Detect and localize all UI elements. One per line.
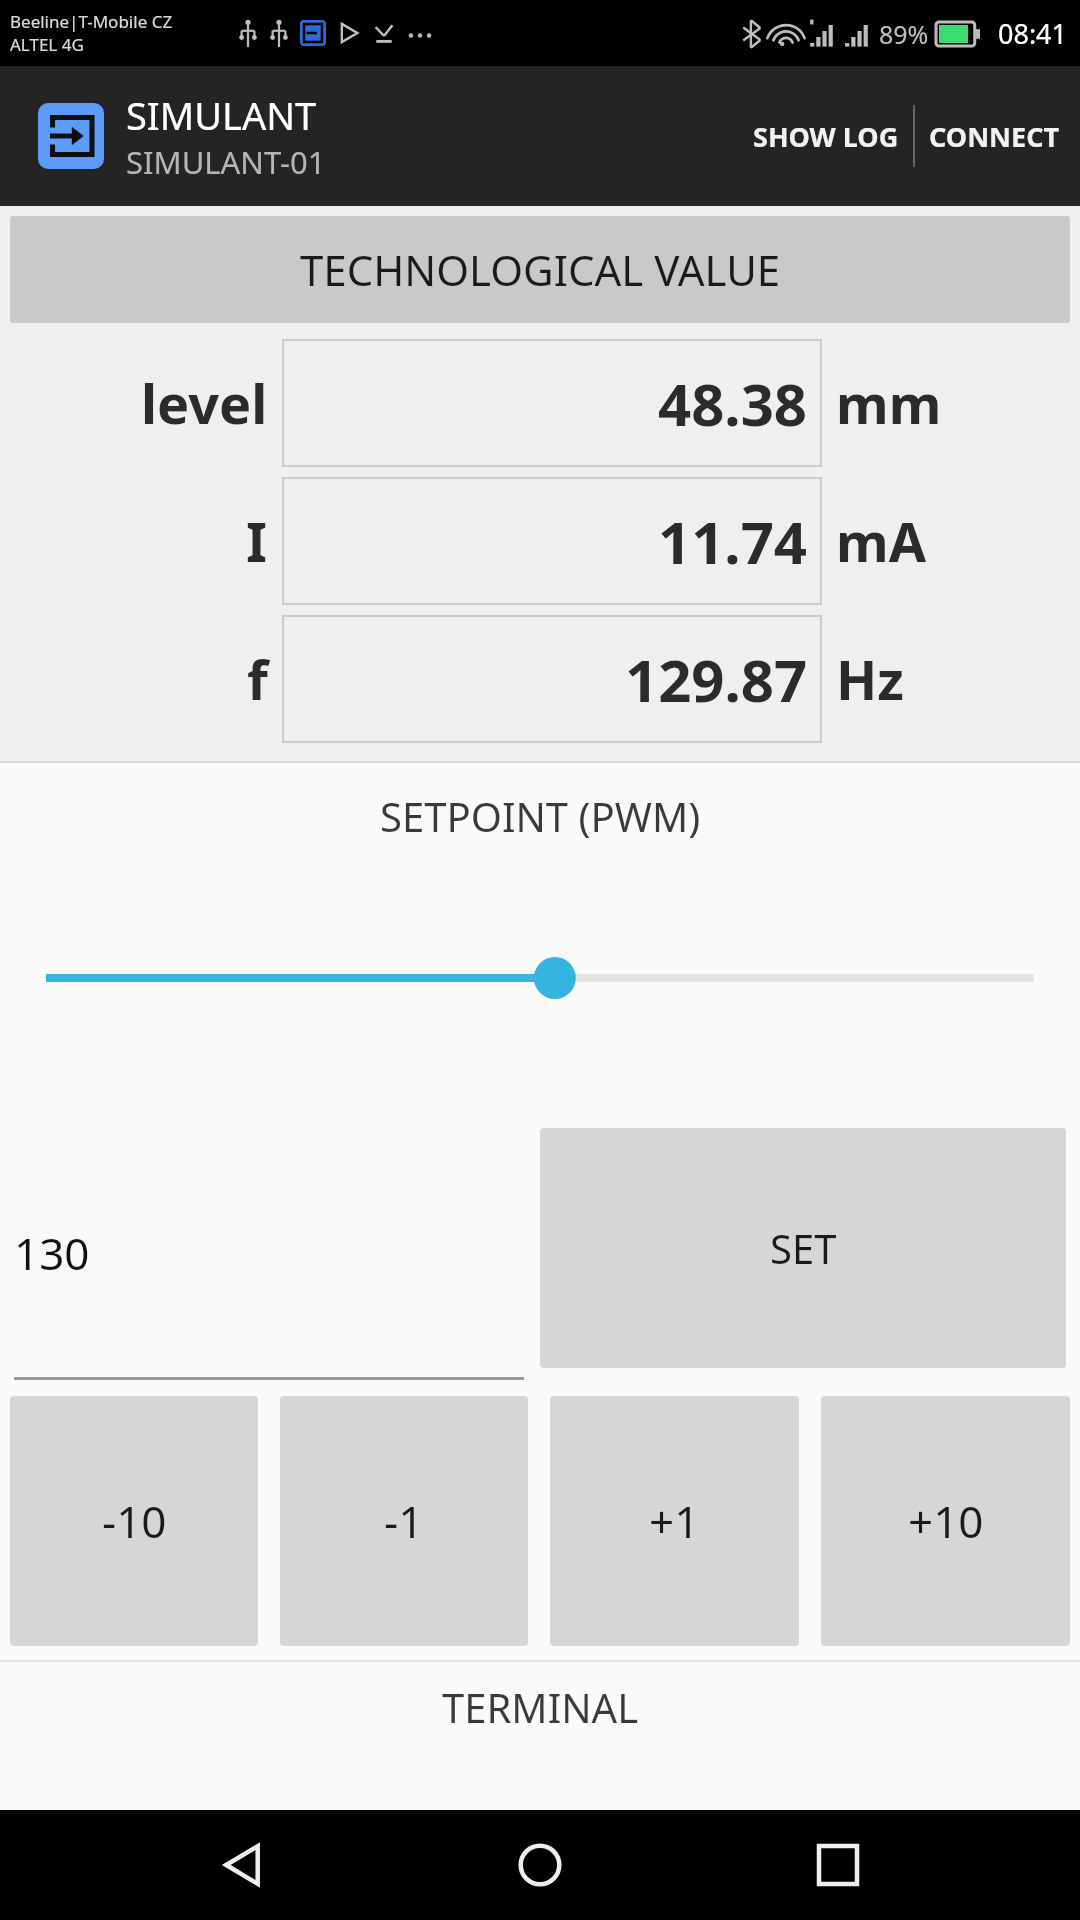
staticText: 130 (14, 1223, 90, 1283)
staticText: TECHNOLOGICAL VALUE (300, 241, 781, 298)
staticText: -1 (384, 1491, 424, 1551)
button[interactable]: Back (188, 1810, 298, 1920)
staticText: 08:41 (998, 15, 1068, 52)
staticText: 89% (879, 17, 929, 51)
button[interactable]: TECHNOLOGICAL VALUE (10, 216, 1070, 323)
staticText: I (246, 504, 268, 578)
button[interactable]: 130 (14, 1128, 524, 1377)
staticText: +10 (908, 1491, 984, 1551)
button[interactable]: +1 (550, 1396, 799, 1646)
staticText: -10 (102, 1491, 167, 1551)
button[interactable]: Recent apps (783, 1810, 893, 1920)
button[interactable]: SHOW LOG (739, 66, 913, 206)
staticText: TERMINAL (442, 1680, 639, 1734)
staticText: SIMULANT (126, 89, 317, 141)
staticText: Hz (836, 642, 904, 716)
button[interactable]: CONNECT (915, 66, 1064, 206)
button[interactable]: SET (540, 1128, 1066, 1368)
staticText: mm (836, 366, 942, 440)
staticText: SETPOINT (PWM) (380, 789, 701, 843)
staticText: SET (770, 1221, 837, 1275)
button[interactable]: Home (485, 1810, 595, 1920)
staticText: mA (836, 504, 927, 578)
staticText: 48.38 (658, 364, 808, 443)
button[interactable]: -1 (280, 1396, 528, 1646)
button[interactable]: -10 (10, 1396, 258, 1646)
staticText: level (141, 366, 268, 440)
staticText: SHOW LOG (753, 118, 899, 155)
staticText: +1 (649, 1491, 700, 1551)
staticText: CONNECT (929, 118, 1060, 155)
staticText: SIMULANT-01 (126, 141, 326, 183)
staticText: 11.74 (658, 502, 808, 581)
button[interactable]: Setpoint slider (46, 943, 1034, 1013)
staticText: 129.87 (625, 640, 808, 719)
staticText: Beeline|T-Mobile CZ (10, 10, 173, 33)
staticText: ALTEL 4G (10, 33, 84, 56)
button[interactable]: +10 (821, 1396, 1070, 1646)
staticText: f (247, 642, 268, 716)
